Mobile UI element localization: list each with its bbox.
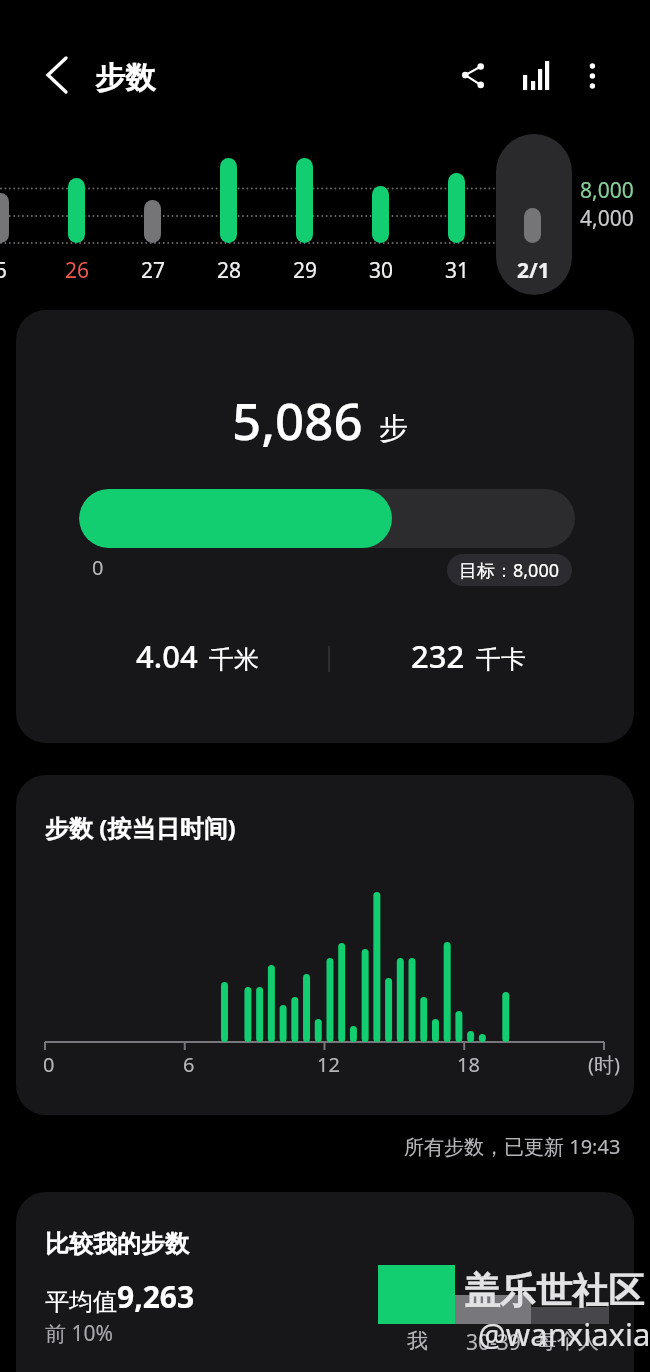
staticText: 前 10% (45, 1319, 113, 1348)
staticText: 2/1 (517, 256, 550, 285)
staticText: 盖乐世社区 (464, 1268, 644, 1313)
button[interactable]: 步数 (按当日时间) (16, 775, 634, 1115)
staticText: 5 (0, 256, 8, 285)
staticText: 4.04 (136, 635, 198, 677)
button[interactable]: More options (570, 50, 620, 100)
staticText: 29 (293, 256, 318, 285)
staticText: 28 (217, 256, 242, 285)
staticText: 目标：8,000 (459, 558, 560, 583)
staticText: 12 (317, 1051, 340, 1078)
staticText: 0 (92, 554, 104, 581)
staticText: 比较我的步数 (45, 1229, 189, 1259)
staticText: 26 (65, 256, 90, 285)
staticText: 步数 (95, 59, 155, 97)
staticText: @wanxiaxia (478, 1313, 650, 1355)
button[interactable]: 5,086 (16, 310, 634, 743)
button[interactable]: Back (32, 50, 82, 100)
staticText: (时) (588, 1051, 620, 1078)
staticText: 4,000 (580, 204, 634, 233)
staticText: 9,263 (117, 1276, 195, 1317)
staticText: 30 (369, 256, 394, 285)
staticText: 27 (141, 256, 166, 285)
staticText: 6 (183, 1051, 195, 1078)
staticText: 千卡 (476, 644, 526, 675)
button[interactable]: Chart (511, 50, 561, 100)
staticText: 5,086 (232, 385, 363, 454)
staticText: 步 (379, 410, 408, 447)
staticText: 我 (407, 1328, 428, 1354)
staticText: 18 (457, 1051, 480, 1078)
staticText: 8,000 (580, 176, 634, 205)
staticText: 步数 (按当日时间) (45, 811, 236, 844)
button[interactable]: 2/1 (496, 134, 572, 295)
staticText: 每个人 (536, 1328, 599, 1354)
staticText: 0 (43, 1051, 55, 1078)
staticText: 千米 (209, 644, 259, 675)
staticText: 30-39 (466, 1328, 521, 1357)
staticText: 平均值 (45, 1287, 117, 1317)
button[interactable]: Share (450, 50, 500, 100)
staticText: 232 (411, 635, 465, 677)
button[interactable]: 比较我的步数 (16, 1192, 634, 1372)
staticText: 所有步数，已更新 19:43 (404, 1133, 621, 1160)
staticText: 31 (445, 256, 470, 285)
